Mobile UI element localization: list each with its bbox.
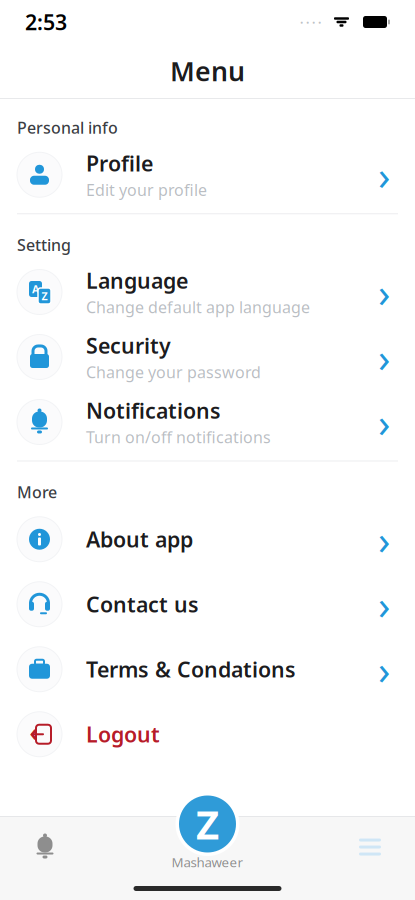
staticText: Setting [17,234,71,255]
staticText: Notifications [86,396,221,424]
staticText: › [378,395,390,448]
staticText: Profile [86,149,153,177]
staticText: Z [41,289,47,303]
staticText: · · · · [300,14,321,30]
staticText: › [378,643,390,696]
staticText: 2:53 [25,8,67,36]
button[interactable]: Profile [0,142,415,207]
staticText: Terms & Condations [86,655,296,683]
button[interactable]: Notifications [0,817,90,877]
staticText: Edit your profile [86,179,207,200]
staticText: › [378,578,390,631]
staticText: › [378,148,390,201]
button[interactable]: Menu [325,817,415,877]
staticText: › [378,513,390,566]
staticText: More [17,481,57,503]
button[interactable]: Contact us [0,572,415,637]
button[interactable]: Mashaweer [152,817,262,877]
button[interactable]: About app [0,507,415,572]
button[interactable]: A [0,259,415,324]
button[interactable]: Notifications [0,389,415,454]
staticText: Language [86,266,188,294]
button[interactable]: ‹ [0,702,415,767]
staticText: Security [86,331,171,359]
staticText: Turn on/off notifications [86,426,271,448]
staticText: Change default app language [86,296,310,318]
staticText: About app [86,525,193,553]
staticText: ‹ [29,717,37,747]
staticText: Change your password [86,361,261,383]
staticText: Mashaweer [171,853,243,871]
staticText: › [378,265,390,318]
button[interactable]: Security [0,324,415,389]
staticText: A [32,282,39,296]
staticText: Contact us [86,590,199,618]
staticText: Z [196,797,219,850]
staticText: Menu [170,53,245,89]
button[interactable]: Terms & Condations [0,637,415,702]
staticText: › [378,330,390,383]
staticText: Personal info [17,117,118,138]
staticText: Logout [86,720,160,748]
button[interactable]: Mashaweer home [175,792,239,856]
